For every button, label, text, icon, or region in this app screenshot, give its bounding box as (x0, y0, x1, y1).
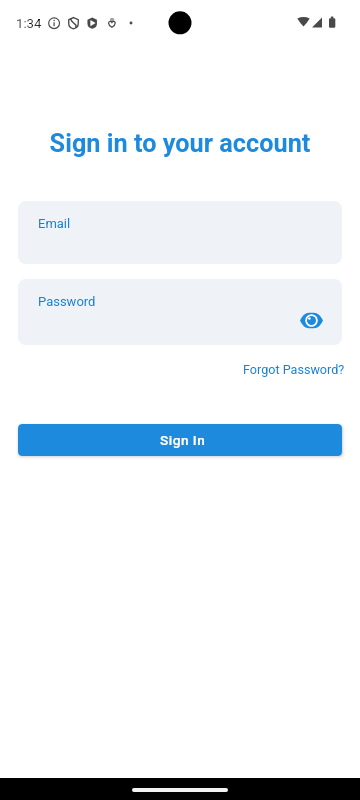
button[interactable]: Show password (296, 308, 326, 332)
staticText: 1:34 (16, 16, 42, 31)
staticText: Email (38, 216, 71, 231)
staticText: Sign In (160, 432, 206, 448)
button[interactable]: Forgot Password? (243, 362, 345, 377)
button[interactable]: Sign In (18, 424, 342, 456)
staticText: Forgot Password? (243, 362, 345, 377)
button[interactable]: Password (18, 279, 342, 345)
staticText: Sign in to your account (0, 129, 360, 159)
staticText: Password (38, 294, 96, 309)
button[interactable]: Email (18, 201, 342, 264)
